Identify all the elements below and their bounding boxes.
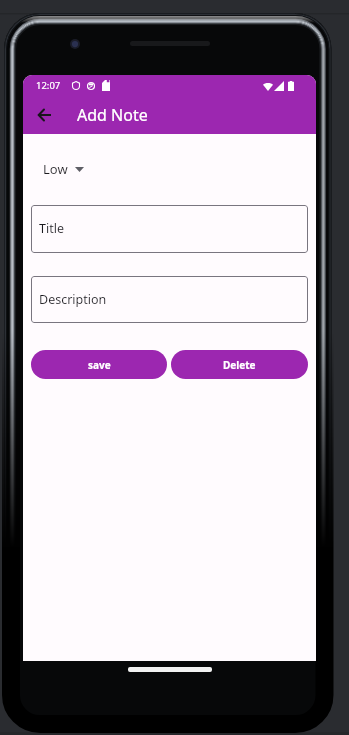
button[interactable]: Low <box>37 156 84 182</box>
button[interactable]: Description <box>31 276 308 323</box>
button[interactable]: Delete <box>171 350 308 379</box>
staticText: save <box>88 358 111 372</box>
staticText: Delete <box>223 358 256 372</box>
staticText: 12:07 <box>36 79 61 92</box>
staticText: Add Note <box>77 104 148 126</box>
button[interactable]: save <box>31 350 167 379</box>
staticText: Description <box>39 291 107 308</box>
button[interactable]: Title <box>31 205 308 253</box>
staticText: Title <box>39 220 64 237</box>
button[interactable]: Back <box>28 99 60 131</box>
staticText: Low <box>43 160 68 178</box>
